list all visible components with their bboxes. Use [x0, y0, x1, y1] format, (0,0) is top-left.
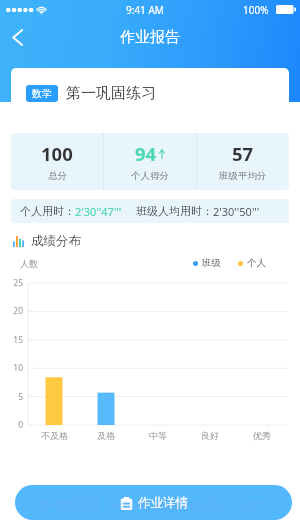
staticText: 个人 [247, 257, 266, 269]
staticText: 15 [13, 334, 23, 346]
staticText: 班级平均分 [219, 170, 267, 182]
staticText: 华创应用 • HUACHUANGZS.COM [39, 494, 262, 514]
staticText: 中等 [149, 430, 167, 441]
staticText: 第一巩固练习 [66, 84, 156, 103]
button[interactable]: 数学 [11, 68, 289, 122]
staticText: 班级 [202, 257, 221, 269]
staticText: 9:41 AM [126, 3, 164, 17]
staticText: 5 [18, 391, 23, 403]
staticText: 及格 [97, 430, 115, 441]
staticText: 100% [243, 3, 269, 17]
staticText: 良好 [201, 430, 219, 441]
staticText: 个人得分 [131, 170, 169, 182]
staticText: 优秀 [253, 430, 271, 441]
button[interactable]: Back [0, 20, 34, 54]
staticText: 数学 [32, 87, 52, 100]
staticText: 10 [13, 362, 23, 374]
staticText: 20 [13, 305, 23, 317]
staticText: 2'30''50''' [213, 204, 260, 219]
staticText: 总分 [48, 170, 67, 182]
staticText: 班级人均用时： [136, 204, 213, 218]
button[interactable]: 作业详情 [15, 485, 292, 520]
staticText: 成绩分布 [31, 233, 81, 249]
staticText: 57 [232, 141, 254, 166]
staticText: 94 [135, 141, 157, 166]
staticText: 不及格 [41, 430, 68, 441]
staticText: 个人用时： [20, 204, 75, 218]
staticText: 作业详情 [138, 495, 188, 511]
staticText: 0 [18, 419, 23, 431]
staticText: 作业报告 [120, 28, 180, 47]
staticText: 人数 [20, 258, 38, 269]
staticText: 100 [41, 141, 73, 166]
staticText: 25 [13, 277, 23, 289]
staticText: 2'30''47''' [75, 204, 122, 219]
